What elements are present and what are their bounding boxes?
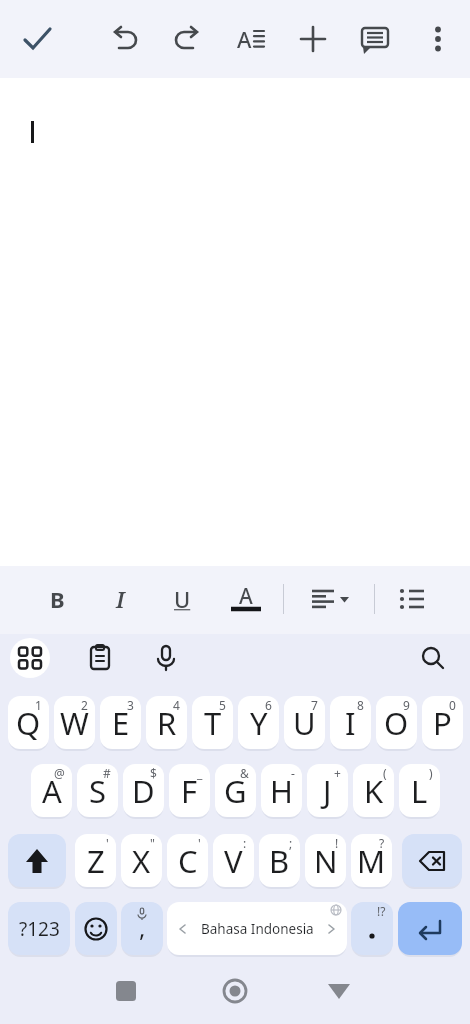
staticText: 6 (265, 697, 272, 713)
button[interactable]: ?123 (8, 902, 70, 956)
staticText: R (157, 702, 177, 744)
staticText: D (132, 770, 155, 812)
button[interactable] (10, 638, 50, 678)
button[interactable]: U (160, 577, 204, 621)
staticText: " (150, 835, 155, 851)
button[interactable] (211, 967, 259, 1015)
staticText: Z (87, 840, 105, 882)
button[interactable]: T (192, 696, 233, 750)
button[interactable] (414, 15, 462, 63)
button[interactable]: G (215, 764, 256, 818)
button[interactable]: B (35, 577, 79, 621)
button[interactable]: L (399, 764, 440, 818)
button[interactable] (13, 15, 61, 63)
button[interactable] (142, 634, 190, 682)
button[interactable]: V (213, 834, 254, 888)
staticText: I (345, 702, 356, 744)
staticText: @ (54, 765, 65, 781)
button[interactable]: A (31, 764, 72, 818)
button[interactable]: W (54, 696, 95, 750)
staticText: ' (198, 835, 201, 851)
button[interactable] (289, 15, 337, 63)
staticText: + (334, 765, 341, 781)
button[interactable]: A (224, 577, 268, 621)
button[interactable] (402, 834, 462, 888)
staticText: M (357, 840, 386, 882)
staticText: A (42, 770, 62, 812)
button[interactable]: , (121, 902, 163, 956)
staticText: K (364, 770, 384, 812)
button[interactable]: Y (238, 696, 279, 750)
button[interactable] (398, 902, 462, 956)
staticText: G (224, 770, 247, 812)
button[interactable]: B (259, 834, 300, 888)
staticText: 5 (219, 697, 226, 713)
staticText: ?123 (19, 916, 60, 942)
button[interactable] (409, 634, 457, 682)
button[interactable]: X (121, 834, 162, 888)
staticText: L (411, 770, 428, 812)
button[interactable]: K (353, 764, 394, 818)
button[interactable]: J (307, 764, 348, 818)
button[interactable]: C (167, 834, 208, 888)
button[interactable] (75, 902, 117, 956)
staticText: 9 (403, 697, 410, 713)
button[interactable]: N (305, 834, 346, 888)
staticText: 2 (81, 697, 88, 713)
button[interactable]: A (226, 15, 274, 63)
button[interactable]: Bahasa Indonesia (167, 902, 347, 956)
staticText: J (323, 770, 332, 812)
staticText: F (181, 770, 198, 812)
staticText: A (237, 24, 252, 54)
staticText: # (103, 765, 111, 781)
button[interactable] (351, 15, 399, 63)
button[interactable] (101, 15, 149, 63)
staticText: - (291, 765, 295, 781)
button[interactable]: H (261, 764, 302, 818)
staticText: , (139, 911, 146, 944)
staticText: 8 (357, 697, 364, 713)
button[interactable] (163, 15, 211, 63)
button[interactable]: O (376, 696, 417, 750)
button[interactable]: F (169, 764, 210, 818)
staticText: E (112, 702, 130, 744)
button[interactable] (388, 575, 436, 623)
staticText: _ (197, 765, 203, 781)
button[interactable]: U (284, 696, 325, 750)
button[interactable]: !? (351, 902, 393, 956)
button[interactable]: I (98, 577, 142, 621)
staticText: 0 (449, 697, 456, 713)
button[interactable] (315, 967, 363, 1015)
staticText: ' (106, 835, 109, 851)
staticText: 7 (311, 697, 318, 713)
staticText: Q (16, 702, 41, 744)
staticText: Bahasa Indonesia (201, 920, 314, 938)
staticText: P (433, 702, 452, 744)
button[interactable]: S (77, 764, 118, 818)
button[interactable]: I (330, 696, 371, 750)
button[interactable] (8, 834, 66, 888)
staticText: V (224, 840, 243, 882)
staticText: H (270, 770, 293, 812)
button[interactable] (304, 573, 356, 625)
staticText: ; (289, 835, 293, 851)
staticText: 3 (127, 697, 134, 713)
button[interactable]: E (100, 696, 141, 750)
staticText: B (269, 840, 290, 882)
button[interactable]: D (123, 764, 164, 818)
staticText: ) (429, 765, 433, 781)
staticText: S (89, 770, 107, 812)
button[interactable] (102, 967, 150, 1015)
button[interactable]: Z (75, 834, 116, 888)
button[interactable]: P (422, 696, 463, 750)
button[interactable]: Q (8, 696, 49, 750)
staticText: $ (150, 765, 157, 781)
staticText: ! (335, 835, 339, 851)
staticText: O (384, 702, 409, 744)
button[interactable]: R (146, 696, 187, 750)
staticText: ( (383, 765, 387, 781)
button[interactable] (76, 634, 124, 682)
staticText: !? (377, 903, 386, 919)
staticText: U (174, 584, 191, 614)
button[interactable]: M (351, 834, 392, 888)
